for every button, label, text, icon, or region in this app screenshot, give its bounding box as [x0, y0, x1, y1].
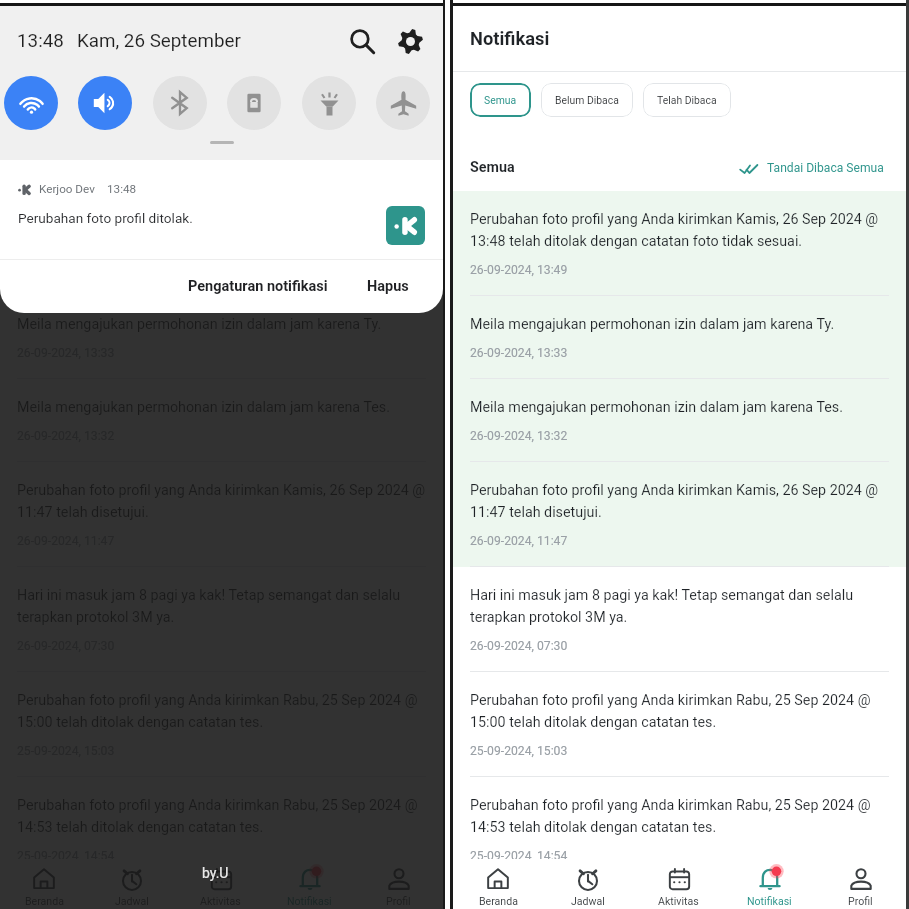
- button[interactable]: Hari ini masuk jam 8 pagi ya kak! Tetap …: [0, 567, 443, 672]
- button[interactable]: Hapus: [362, 269, 414, 304]
- staticText: Telah Dibaca: [657, 94, 717, 106]
- staticText: Kerjoo Dev: [39, 182, 95, 196]
- staticText: 14:53 telah ditolak dengan catatan tes.: [17, 819, 264, 836]
- staticText: Profil: [848, 895, 873, 907]
- staticText: 26-09-2024, 13:32: [470, 429, 568, 443]
- staticText: Notifikasi: [747, 895, 792, 907]
- button[interactable]: Profil: [354, 859, 443, 909]
- staticText: 15:00 telah ditolak dengan catatan tes.: [470, 714, 717, 731]
- staticText: Aktivitas: [200, 895, 241, 907]
- button[interactable]: Tandai Dibaca Semua: [738, 156, 885, 180]
- staticText: terapkan protokol 3M ya.: [470, 609, 628, 626]
- button[interactable]: Jadwal: [543, 859, 633, 909]
- staticText: Perubahan foto profil yang Anda kirimkan…: [470, 211, 879, 228]
- button[interactable]: Meila mengajukan permohonan izin dalam j…: [453, 296, 906, 379]
- button[interactable]: Aktivitas: [176, 859, 265, 909]
- staticText: Semua: [470, 159, 515, 176]
- staticText: Jadwal: [115, 895, 149, 907]
- staticText: Meila mengajukan permohonan izin dalam j…: [470, 316, 835, 333]
- staticText: 26-09-2024, 13:33: [17, 346, 115, 360]
- staticText: Perubahan foto profil yang Anda kirimkan…: [17, 482, 426, 499]
- button[interactable]: Notifikasi: [724, 859, 815, 909]
- staticText: Perubahan foto profil yang Anda kirimkan…: [17, 211, 426, 228]
- staticText: Notifikasi: [470, 28, 550, 49]
- staticText: Semua: [484, 94, 517, 106]
- staticText: Perubahan foto profil yang Anda kirimkan…: [470, 797, 871, 814]
- staticText: 11:47 telah disetujui.: [17, 504, 149, 521]
- button[interactable]: Perubahan foto profil yang Anda kirimkan…: [453, 191, 906, 296]
- staticText: 26-09-2024, 13:33: [470, 346, 568, 360]
- button[interactable]: Semua: [470, 83, 531, 117]
- button[interactable]: SIM card: [227, 76, 281, 130]
- staticText: 15:00 telah ditolak dengan catatan tes.: [17, 714, 264, 731]
- button[interactable]: Semua: [17, 83, 78, 117]
- button[interactable]: Belum Dibaca: [541, 83, 633, 117]
- button[interactable]: Aktivitas: [633, 859, 724, 909]
- staticText: Semua: [17, 159, 62, 176]
- staticText: terapkan protokol 3M ya.: [17, 609, 175, 626]
- button[interactable]: Beranda: [453, 859, 543, 909]
- button[interactable]: Meila mengajukan permohonan izin dalam j…: [453, 379, 906, 462]
- button[interactable]: Perubahan foto profil yang Anda kirimkan…: [0, 191, 443, 296]
- button[interactable]: Flashlight: [302, 76, 356, 130]
- button[interactable]: Airplane mode: [376, 76, 430, 130]
- staticText: Perubahan foto profil yang Anda kirimkan…: [470, 692, 871, 709]
- staticText: Belum Dibaca: [555, 94, 619, 106]
- button[interactable]: Beranda: [0, 859, 88, 909]
- button[interactable]: Search: [345, 24, 379, 58]
- staticText: Hari ini masuk jam 8 pagi ya kak! Tetap …: [470, 587, 854, 604]
- button[interactable]: Pengaturan notifikasi: [183, 269, 333, 304]
- staticText: 25-09-2024, 15:03: [470, 744, 568, 758]
- staticText: Meila mengajukan permohonan izin dalam j…: [17, 399, 390, 416]
- button[interactable]: Notifikasi: [265, 859, 354, 909]
- button[interactable]: Perubahan foto profil yang Anda kirimkan…: [453, 672, 906, 777]
- button[interactable]: Sound: [78, 76, 132, 130]
- staticText: Profil: [386, 895, 411, 907]
- button[interactable]: Perubahan foto profil yang Anda kirimkan…: [453, 777, 906, 882]
- staticText: 25-09-2024, 14:54: [470, 849, 568, 863]
- button[interactable]: Meila mengajukan permohonan izin dalam j…: [0, 296, 443, 379]
- staticText: Kam, 26 September: [77, 30, 241, 52]
- button[interactable]: Telah Dibaca: [643, 83, 731, 117]
- staticText: Beranda: [479, 895, 518, 907]
- button[interactable]: Jadwal: [88, 859, 176, 909]
- button[interactable]: Bluetooth: [153, 76, 207, 130]
- button[interactable]: Hari ini masuk jam 8 pagi ya kak! Tetap …: [453, 567, 906, 672]
- staticText: Notifikasi: [287, 895, 332, 907]
- button[interactable]: Perubahan foto profil yang Anda kirimkan…: [0, 777, 443, 882]
- staticText: Perubahan foto profil yang Anda kirimkan…: [17, 797, 418, 814]
- button[interactable]: Settings: [393, 24, 427, 58]
- staticText: 25-09-2024, 15:03: [17, 744, 115, 758]
- staticText: Telah Dibaca: [204, 94, 264, 106]
- staticText: 26-09-2024, 11:47: [470, 534, 568, 548]
- button[interactable]: Tandai Dibaca Semua: [275, 156, 422, 180]
- button[interactable]: Perubahan foto profil yang Anda kirimkan…: [0, 672, 443, 777]
- staticText: Perubahan foto profil yang Anda kirimkan…: [470, 482, 879, 499]
- staticText: 26-09-2024, 07:30: [470, 639, 568, 653]
- staticText: 13:48: [107, 182, 137, 196]
- staticText: Notifikasi: [17, 28, 97, 49]
- button[interactable]: Telah Dibaca: [190, 83, 278, 117]
- button[interactable]: Meila mengajukan permohonan izin dalam j…: [0, 379, 443, 462]
- button[interactable]: Wi-Fi: [4, 76, 58, 130]
- staticText: Hari ini masuk jam 8 pagi ya kak! Tetap …: [17, 587, 401, 604]
- button[interactable]: Perubahan foto profil yang Anda kirimkan…: [0, 462, 443, 567]
- staticText: Beranda: [25, 895, 64, 907]
- staticText: 11:47 telah disetujui.: [470, 504, 602, 521]
- staticText: Meila mengajukan permohonan izin dalam j…: [17, 316, 382, 333]
- button[interactable]: Perubahan foto profil yang Anda kirimkan…: [453, 462, 906, 567]
- staticText: Aktivitas: [658, 895, 699, 907]
- button[interactable]: Profil: [815, 859, 906, 909]
- staticText: 26-09-2024, 13:32: [17, 429, 115, 443]
- button[interactable]: Belum Dibaca: [88, 83, 180, 117]
- staticText: 26-09-2024, 13:49: [470, 263, 568, 277]
- staticText: Tandai Dibaca Semua: [767, 161, 884, 175]
- staticText: Meila mengajukan permohonan izin dalam j…: [470, 399, 843, 416]
- staticText: 14:53 telah ditolak dengan catatan tes.: [470, 819, 717, 836]
- staticText: 13:48: [17, 30, 64, 52]
- staticText: Hapus: [367, 278, 409, 295]
- staticText: by.U: [202, 865, 229, 881]
